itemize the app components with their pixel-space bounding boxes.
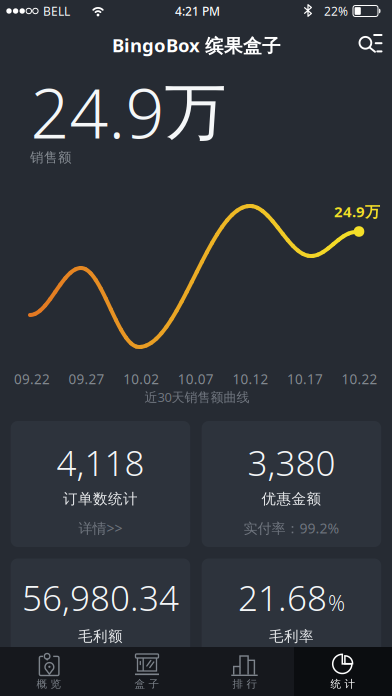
staticText: 10.17 xyxy=(287,370,323,388)
staticText: 订单数统计 xyxy=(63,490,138,508)
staticText: 09.22 xyxy=(14,370,50,388)
staticText: BELL xyxy=(43,3,70,19)
staticText: 近30天销售额曲线 xyxy=(144,388,249,406)
button[interactable]: 56,980.34 xyxy=(11,558,190,684)
staticText: 4,118 xyxy=(56,439,144,486)
staticText: 3,380 xyxy=(247,439,335,486)
staticText: 详情>> xyxy=(78,519,122,537)
staticText: 10.12 xyxy=(232,370,268,388)
staticText: 24.9万 xyxy=(334,201,380,221)
staticText: 概 览 xyxy=(36,678,61,690)
staticText: 10.22 xyxy=(342,370,378,388)
button[interactable]: 21.68 xyxy=(202,558,381,684)
staticText: 24.9 xyxy=(30,67,164,157)
staticText: 优惠金额 xyxy=(261,490,321,508)
staticText: 4:21 PM xyxy=(175,3,220,19)
staticText: 毛利额 xyxy=(78,628,123,645)
staticText: 10.07 xyxy=(178,370,214,388)
button[interactable]: 排 行 xyxy=(196,647,294,696)
staticText: % xyxy=(328,589,345,617)
button[interactable]: 概 览 xyxy=(0,647,98,696)
button[interactable]: 3,380 xyxy=(202,421,381,547)
staticText: 09.27 xyxy=(69,370,105,388)
staticText: 盒 子 xyxy=(134,678,159,690)
staticText: 56,980.34 xyxy=(22,574,179,621)
staticText: 统 计 xyxy=(330,678,355,690)
staticText: BingoBox 缤果盒子 xyxy=(112,33,281,57)
button[interactable]: 统 计 xyxy=(294,647,392,696)
button[interactable]: 盒 子 xyxy=(98,647,196,696)
staticText: 万 xyxy=(164,74,226,150)
staticText: 22% xyxy=(324,3,348,19)
staticText: 10.02 xyxy=(123,370,159,388)
staticText: 实付率：99.2% xyxy=(243,519,339,537)
staticText: 排 行 xyxy=(232,678,257,690)
button[interactable]: 4,118 xyxy=(11,421,190,547)
staticText: 销售额 xyxy=(30,149,72,166)
staticText: 21.68 xyxy=(238,574,327,621)
button[interactable]: 搜索 xyxy=(348,25,388,61)
staticText: 毛利率 xyxy=(269,628,314,645)
staticText: 详情>> xyxy=(269,656,313,675)
